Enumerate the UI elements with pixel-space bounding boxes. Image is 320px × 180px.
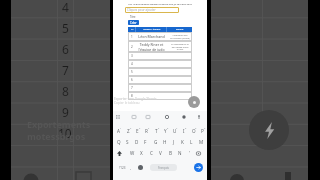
- button[interactable]: 7: [128, 84, 192, 92]
- button[interactable]: 4: [128, 60, 192, 68]
- button[interactable]: Z: [124, 126, 133, 136]
- staticText: I: [183, 128, 185, 134]
- staticText: Q: [117, 139, 121, 145]
- staticText: V: [159, 150, 162, 156]
- button[interactable]: Keyboard tool 3: [162, 112, 172, 122]
- button[interactable]: 5: [128, 68, 192, 76]
- staticText: T: [155, 128, 158, 134]
- staticText: C: [150, 150, 153, 156]
- staticText: Exporter vers Google Sheets: [114, 97, 157, 101]
- staticText: 4: [148, 127, 150, 130]
- button[interactable]: N: [175, 148, 184, 158]
- staticText: D: [135, 139, 139, 145]
- staticText: K: [181, 139, 184, 145]
- staticText: 5: [158, 127, 160, 130]
- staticText: P: [201, 128, 204, 134]
- button[interactable]: Q: [114, 137, 123, 147]
- staticText: Exportements: [27, 118, 91, 130]
- staticText: L: [190, 139, 193, 145]
- button[interactable]: T: [152, 126, 161, 136]
- button[interactable]: J: [169, 137, 178, 147]
- staticText: Copier le tableau: [114, 101, 140, 105]
- staticText: ': [189, 150, 191, 156]
- button[interactable]: 3: [128, 52, 192, 60]
- staticText: ,: [130, 165, 132, 170]
- staticText: 2: [130, 127, 132, 130]
- button[interactable]: V: [156, 148, 165, 158]
- staticText: 9: [195, 127, 197, 130]
- staticText: 6: [62, 41, 69, 57]
- button[interactable]: ,: [127, 163, 135, 171]
- staticText: H: [163, 139, 167, 145]
- button[interactable]: 2: [128, 41, 192, 52]
- button[interactable]: 8: [128, 92, 192, 100]
- staticText: S: [126, 139, 129, 145]
- button[interactable]: I: [179, 126, 188, 136]
- button[interactable]: Keyboard tool 4: [179, 112, 189, 122]
- staticText: 8: [62, 83, 69, 99]
- button[interactable]: Keyboard tool 2: [143, 112, 153, 122]
- button[interactable]: S: [123, 137, 132, 147]
- staticText: J: [173, 139, 175, 145]
- button[interactable]: F: [141, 137, 150, 147]
- button[interactable]: Créer: [128, 20, 139, 25]
- button[interactable]: G: [151, 137, 160, 147]
- staticText: 9: [62, 104, 69, 120]
- button[interactable]: A: [114, 126, 123, 136]
- staticText: E: [136, 128, 139, 134]
- button[interactable]: Enter: [194, 163, 203, 172]
- button[interactable]: P: [198, 126, 207, 136]
- staticText: Titre: [130, 15, 136, 19]
- button[interactable]: Cliquez pour ajouter: [125, 7, 179, 13]
- staticText: Créer: [130, 21, 137, 25]
- button[interactable]: X: [137, 148, 146, 158]
- button[interactable]: 1: [128, 32, 192, 41]
- staticText: Exploit: [176, 28, 184, 31]
- staticText: Athlète / Équipe: [143, 28, 161, 31]
- button[interactable]: Profile: [188, 96, 200, 108]
- button[interactable]: C: [147, 148, 156, 158]
- staticText: 8: [131, 94, 133, 98]
- button[interactable]: W: [128, 148, 137, 158]
- button[interactable]: O: [189, 126, 198, 136]
- staticText: 1: [120, 127, 122, 130]
- button[interactable]: Quick actions: [249, 110, 289, 150]
- button[interactable]: Keyboard tool 0: [113, 112, 123, 122]
- staticText: Cliquez pour ajouter: [127, 8, 156, 12]
- staticText: 4: [131, 62, 133, 66]
- staticText: F: [144, 139, 147, 145]
- staticText: 3: [131, 54, 133, 58]
- button[interactable]: U: [170, 126, 179, 136]
- button[interactable]: Emoji: [136, 163, 145, 172]
- staticText: 3: [139, 127, 141, 130]
- button[interactable]: Keyboard tool 1: [129, 112, 139, 122]
- button[interactable]: Shift: [114, 148, 125, 159]
- staticText: 4 médailles d'or en natation (record): [170, 34, 190, 39]
- button[interactable]: Backspace: [193, 148, 204, 159]
- staticText: Léon Marchand: [138, 34, 165, 39]
- staticText: 5: [62, 20, 69, 36]
- staticText: 7: [62, 62, 69, 78]
- button[interactable]: E: [133, 126, 142, 136]
- button[interactable]: D: [132, 137, 141, 147]
- staticText: Les 10 plus grands athlètes Français aux…: [128, 2, 192, 5]
- button[interactable]: ?123: [117, 163, 128, 173]
- staticText: Z: [127, 128, 130, 134]
- button[interactable]: Français: [150, 164, 177, 171]
- button[interactable]: B: [166, 148, 175, 158]
- button[interactable]: ': [185, 148, 194, 158]
- button[interactable]: R: [142, 126, 151, 136]
- staticText: 7: [176, 127, 178, 130]
- staticText: B: [169, 150, 172, 156]
- staticText: M: [199, 139, 204, 145]
- button[interactable]: Y: [161, 126, 170, 136]
- button[interactable]: 6: [128, 76, 192, 84]
- staticText: U: [173, 128, 177, 134]
- button[interactable]: H: [160, 137, 169, 147]
- button[interactable]: K: [178, 137, 187, 147]
- button[interactable]: M: [197, 137, 206, 147]
- button[interactable]: L: [187, 137, 196, 147]
- staticText: O: [192, 128, 196, 134]
- staticText: motessbrgos: [27, 130, 86, 142]
- button[interactable]: Keyboard tool 5: [194, 112, 204, 122]
